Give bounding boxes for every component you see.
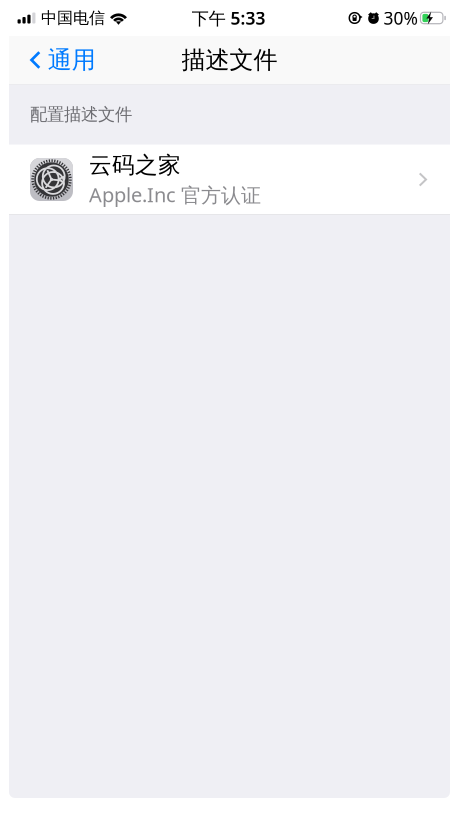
- staticText: 下午 5:33: [191, 6, 265, 29]
- button[interactable]: 云码之家: [9, 144, 450, 214]
- staticText: 配置描述文件: [30, 104, 132, 125]
- staticText: 30%: [383, 6, 417, 29]
- button[interactable]: 通用: [9, 37, 106, 83]
- staticText: 中国电信: [41, 8, 105, 28]
- staticText: 云码之家: [89, 151, 181, 179]
- staticText: 通用: [48, 45, 96, 75]
- staticText: 描述文件: [181, 45, 277, 75]
- staticText: Apple.Inc 官方认证: [89, 181, 261, 208]
